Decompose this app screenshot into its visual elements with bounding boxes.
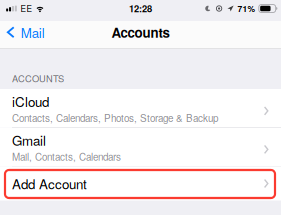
button[interactable]: iCloud (0, 89, 281, 127)
staticText: 12:28 (129, 2, 152, 15)
staticText: iCloud (12, 92, 49, 111)
staticText: Gmail (12, 130, 46, 149)
button[interactable]: Add Account (0, 166, 281, 200)
staticText: Mail (21, 23, 45, 42)
staticText: Mail, Contacts, Calendars (12, 149, 121, 164)
staticText: Accounts (111, 23, 169, 42)
staticText: Add Account (12, 174, 87, 193)
button[interactable]: Gmail (0, 128, 281, 166)
staticText: 71% (237, 2, 255, 15)
button[interactable]: Mail (0, 21, 54, 49)
staticText: ACCOUNTS (12, 72, 64, 85)
staticText: EE (21, 3, 33, 14)
staticText: Contacts, Calendars, Photos, Storage & B… (12, 111, 218, 125)
